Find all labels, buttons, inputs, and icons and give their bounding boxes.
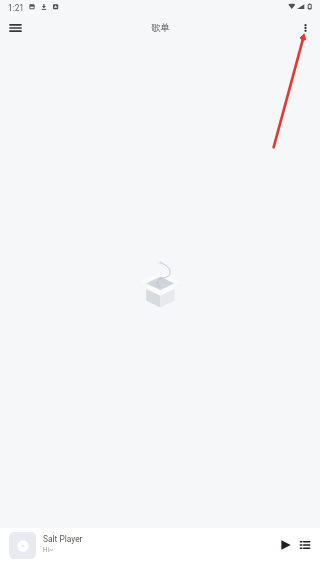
button[interactable]: Album cover (9, 532, 36, 559)
staticText: Salt Player (43, 534, 83, 544)
button[interactable]: Play (274, 533, 298, 557)
staticText: 1:21 (8, 3, 24, 13)
button[interactable]: More options (292, 14, 318, 42)
button[interactable]: Playing queue (293, 533, 317, 557)
button[interactable]: Navigation menu (0, 14, 30, 42)
staticText: Hi~ (43, 546, 54, 553)
staticText: 歌单 (151, 22, 170, 34)
